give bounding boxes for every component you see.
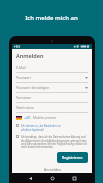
staticText: Passwort bestätigen	[16, 85, 85, 90]
button[interactable]: Anmelden	[16, 167, 88, 172]
button[interactable]: Back	[26, 174, 34, 182]
staticText: Ich stimme zu, die Newsletter zu	[21, 124, 62, 128]
staticText: Passwort	[16, 75, 85, 80]
button[interactable]: E-Mail	[16, 63, 88, 73]
staticText: Anmelden	[44, 167, 61, 172]
button[interactable]: Passwort bestätigen	[16, 83, 88, 93]
staticText: Ich melde mich an	[25, 14, 78, 22]
staticText: Registrieren	[62, 155, 83, 160]
staticText: erhalten (optional).	[21, 128, 45, 132]
staticText: Ich bestätige, dass ich die Datenschutze…	[21, 135, 88, 148]
staticText: Vorname	[16, 95, 88, 100]
staticText: Nachname	[16, 105, 88, 110]
staticText: +49	[24, 115, 31, 120]
button[interactable]: Ich stimme zu, die Newsletter zu	[16, 124, 88, 132]
button[interactable]: Nachname	[16, 103, 88, 113]
button[interactable]: Home	[48, 174, 56, 182]
staticText: Mobilnummer	[33, 115, 57, 120]
button[interactable]: Registrieren	[57, 152, 88, 163]
button[interactable]: Passwort	[16, 73, 88, 83]
button[interactable]: Recent apps	[70, 174, 78, 182]
button[interactable]: Ich bestätige, dass ich die Datenschutze…	[16, 135, 88, 148]
button[interactable]: +49	[16, 115, 88, 120]
staticText: E-Mail	[16, 65, 88, 70]
staticText: Anmelden	[16, 52, 44, 59]
button[interactable]: Vorname	[16, 93, 88, 103]
